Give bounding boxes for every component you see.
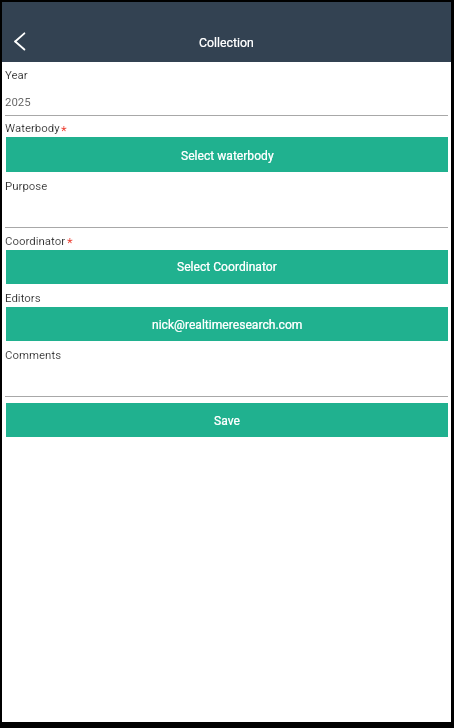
- staticText: 2025: [5, 95, 31, 108]
- staticText: Select waterbody: [181, 149, 274, 163]
- staticText: Comments: [5, 348, 62, 361]
- staticText: Select Coordinator: [177, 260, 277, 274]
- button[interactable]: Comments: [2, 345, 451, 397]
- button[interactable]: Year: [2, 63, 451, 115]
- button[interactable]: Select Coordinator: [6, 250, 448, 284]
- staticText: Save: [214, 414, 240, 428]
- button[interactable]: Select waterbody: [6, 137, 448, 172]
- button[interactable]: Navigate back: [2, 23, 40, 61]
- staticText: nick@realtimeresearch.com: [152, 318, 303, 332]
- button[interactable]: nick@realtimeresearch.com: [6, 307, 448, 341]
- button[interactable]: Purpose: [2, 176, 451, 228]
- staticText: *: [61, 123, 67, 138]
- staticText: Collection: [199, 36, 254, 50]
- staticText: Year: [5, 68, 28, 81]
- staticText: Purpose: [5, 179, 48, 192]
- staticText: *: [67, 235, 73, 250]
- button[interactable]: Save: [6, 403, 448, 437]
- staticText: Editors: [5, 291, 41, 304]
- staticText: Coordinator: [5, 234, 66, 247]
- staticText: Waterbody: [5, 121, 60, 134]
